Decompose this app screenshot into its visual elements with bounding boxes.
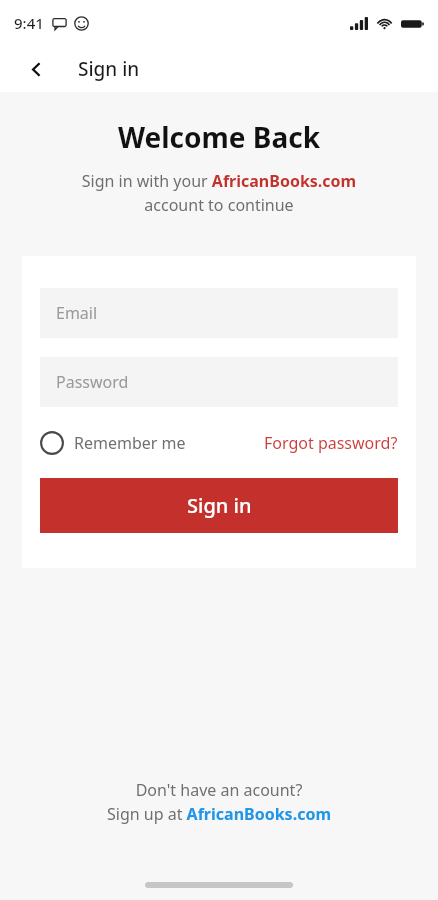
staticText: Sign in — [78, 56, 140, 82]
button[interactable]: Password — [40, 357, 398, 407]
button[interactable]: Don't have an acount? Sign up at African… — [0, 779, 438, 825]
staticText: Welcome Back — [118, 118, 321, 156]
button[interactable]: Forgot password? — [264, 428, 398, 458]
button[interactable]: Remember me — [40, 428, 186, 458]
staticText: 9:41 — [14, 13, 44, 33]
staticText: Sign in with your AfricanBooks.com accou… — [24, 170, 414, 216]
staticText: Forgot password? — [264, 432, 398, 454]
staticText: Sign in — [187, 492, 252, 519]
button[interactable]: Email — [40, 288, 398, 338]
button[interactable]: Back — [18, 51, 54, 87]
staticText: Password — [56, 371, 129, 393]
staticText: Email — [56, 302, 98, 324]
staticText: Remember me — [74, 432, 186, 454]
button[interactable]: Sign in — [40, 478, 398, 533]
